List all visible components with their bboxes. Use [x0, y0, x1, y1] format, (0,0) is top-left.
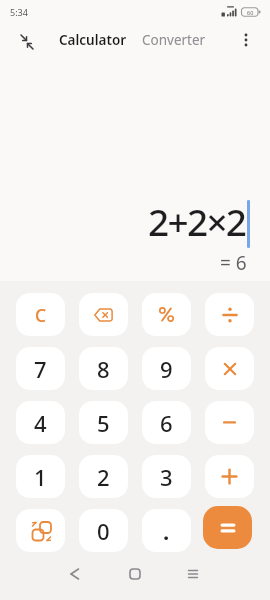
staticText: 1 — [34, 462, 47, 492]
button[interactable] — [205, 455, 254, 498]
button[interactable] — [180, 552, 270, 600]
button[interactable]: 0 — [79, 509, 128, 552]
button[interactable]: 6 — [142, 401, 191, 444]
button[interactable] — [142, 293, 191, 336]
staticText: 9 — [160, 354, 173, 384]
button[interactable] — [19, 34, 35, 50]
button[interactable]: 9 — [142, 347, 191, 390]
button[interactable]: 5 — [79, 401, 128, 444]
button[interactable] — [90, 552, 180, 600]
button[interactable]: 7 — [16, 347, 65, 390]
staticText: = 6 — [220, 250, 247, 276]
button[interactable] — [16, 509, 65, 552]
button[interactable] — [243, 32, 249, 48]
staticText: 5 — [97, 408, 110, 438]
staticText: 7 — [34, 354, 47, 384]
staticText: 5:34 — [10, 6, 28, 18]
staticText: . — [163, 516, 170, 546]
staticText: 6 — [160, 408, 173, 438]
staticText: 3 — [160, 462, 173, 492]
staticText: 60 — [247, 9, 254, 16]
button[interactable] — [205, 347, 254, 390]
staticText: 4 — [34, 408, 47, 438]
button[interactable]: . — [142, 509, 191, 552]
button[interactable]: 4 — [16, 401, 65, 444]
button[interactable] — [205, 401, 254, 444]
button[interactable]: 3 — [142, 455, 191, 498]
button[interactable]: Calculator — [59, 31, 127, 49]
staticText: 2+2×2 — [148, 196, 246, 246]
button[interactable]: 1 — [16, 455, 65, 498]
button[interactable]: Converter — [142, 31, 206, 49]
button[interactable]: C — [16, 293, 65, 336]
button[interactable]: 8 — [79, 347, 128, 390]
button[interactable]: 2 — [79, 455, 128, 498]
button[interactable] — [205, 293, 254, 336]
staticText: 2 — [97, 462, 110, 492]
staticText: 0 — [97, 516, 110, 546]
staticText: 8 — [97, 354, 110, 384]
button[interactable] — [0, 552, 90, 600]
button[interactable] — [79, 293, 128, 336]
button[interactable] — [203, 506, 252, 549]
staticText: C — [35, 303, 47, 327]
